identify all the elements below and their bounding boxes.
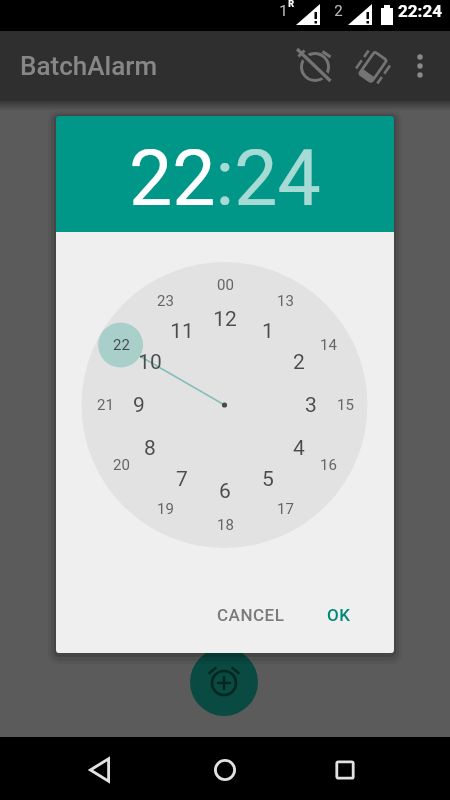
staticText: CANCEL [217, 605, 285, 625]
staticText: 22:24 [129, 134, 321, 224]
staticText: R [288, 0, 294, 10]
staticText: OK [327, 605, 351, 625]
staticText: 00 [217, 276, 234, 294]
staticText: 6 [219, 479, 231, 504]
staticText: 5 [262, 467, 274, 492]
staticText: 16 [320, 456, 337, 474]
staticText: 10 [138, 350, 162, 375]
staticText: 9 [133, 393, 145, 418]
staticText: 1 [262, 319, 274, 344]
staticText: 13 [277, 292, 294, 310]
staticText: 2 [334, 2, 343, 20]
button[interactable] [190, 648, 258, 716]
button[interactable]: CANCEL [201, 591, 301, 639]
staticText: 11 [170, 319, 194, 344]
button[interactable] [315, 740, 375, 800]
button[interactable] [195, 740, 255, 800]
staticText: 4 [293, 436, 305, 461]
staticText: 7 [176, 467, 188, 492]
button[interactable] [70, 740, 130, 800]
button[interactable] [349, 43, 397, 91]
staticText: 19 [157, 500, 174, 518]
staticText: 22:24 [398, 1, 442, 21]
staticText: 18 [217, 516, 234, 534]
staticText: 3 [305, 393, 317, 418]
button[interactable] [400, 42, 440, 90]
button[interactable] [291, 43, 339, 91]
staticText: BatchAlarm [20, 51, 158, 81]
button[interactable]: OK [304, 591, 374, 639]
staticText: 22 [113, 336, 130, 354]
staticText: 8 [144, 436, 156, 461]
staticText: 2 [293, 350, 305, 375]
staticText: 14 [320, 336, 337, 354]
staticText: 21 [97, 396, 114, 414]
staticText: 15 [337, 396, 354, 414]
staticText: 20 [113, 456, 130, 474]
staticText: 1 [279, 2, 288, 20]
staticText: 23 [157, 292, 174, 310]
staticText: 12 [213, 307, 237, 332]
staticText: 17 [277, 500, 294, 518]
